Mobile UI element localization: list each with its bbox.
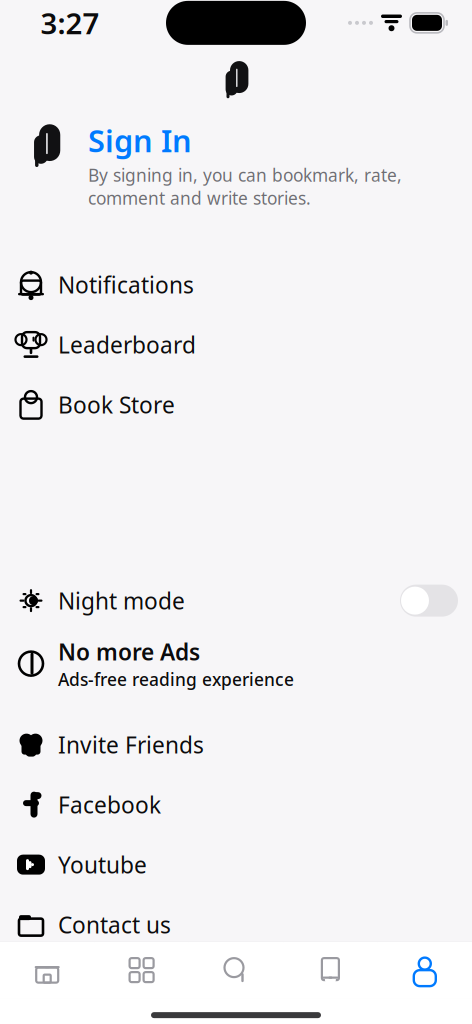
button[interactable]: Bookmarks (283, 942, 378, 998)
staticText: Contact us (58, 910, 171, 940)
button[interactable]: Contact us (0, 908, 472, 942)
button[interactable]: Book Store (0, 388, 472, 422)
button[interactable]: No more Ads (0, 644, 472, 684)
staticText: Facebook (58, 790, 161, 820)
button[interactable]: Facebook (0, 788, 472, 822)
staticText: No more Ads (58, 637, 200, 667)
staticText: Night mode (58, 586, 185, 616)
button[interactable]: Sign In (0, 106, 472, 210)
button[interactable]: Notifications (0, 268, 472, 302)
staticText: Ads-free reading experience (58, 668, 294, 691)
staticText: Youtube (58, 850, 147, 880)
button[interactable]: Night mode (0, 584, 472, 618)
staticText: Book Store (58, 390, 175, 420)
staticText: Sign In (88, 120, 192, 161)
staticText: 3:27 (40, 3, 99, 42)
button[interactable]: Youtube (0, 848, 472, 882)
button[interactable]: Invite Friends (0, 728, 472, 762)
button[interactable]: Leaderboard (0, 328, 472, 362)
button[interactable]: Home (0, 942, 94, 998)
staticText: By signing in, you can bookmark, rate, c… (88, 164, 402, 210)
staticText: Invite Friends (58, 730, 204, 760)
button[interactable]: Profile (378, 942, 472, 998)
staticText: Notifications (58, 270, 194, 300)
staticText: Leaderboard (58, 330, 196, 360)
button[interactable]: Browse (94, 942, 189, 998)
button[interactable]: Search (189, 942, 283, 998)
